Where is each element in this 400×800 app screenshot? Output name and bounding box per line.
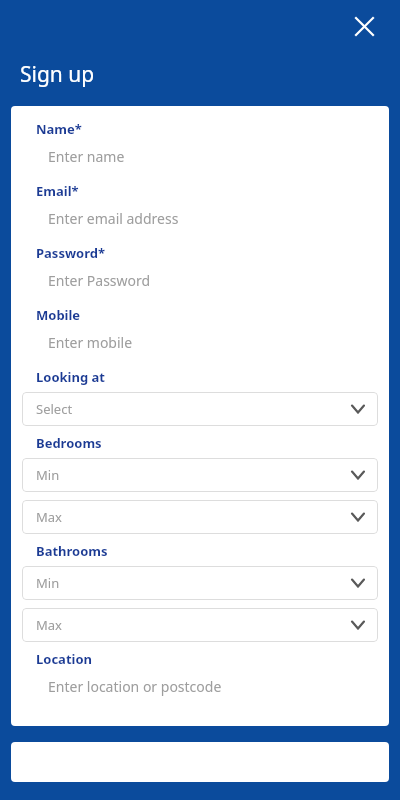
staticText: Mobile — [36, 306, 81, 324]
staticText: Password* — [36, 244, 105, 262]
staticText: Enter Password — [48, 271, 151, 290]
button[interactable]: Enter mobile — [22, 324, 378, 360]
staticText: Max — [36, 616, 348, 634]
button[interactable]: Enter location or postcode — [22, 668, 378, 704]
staticText: Bedrooms — [36, 434, 102, 452]
button[interactable]: Select — [22, 392, 378, 426]
staticText: Min — [36, 466, 348, 484]
button[interactable]: Min — [22, 458, 378, 492]
staticText: Max — [36, 508, 348, 526]
staticText: Enter email address — [48, 209, 179, 228]
staticText: Min — [36, 574, 348, 592]
button[interactable]: Max — [22, 500, 378, 534]
button[interactable]: Min — [22, 566, 378, 600]
button[interactable]: Close — [350, 12, 378, 40]
staticText: Select — [36, 400, 348, 418]
staticText: Name* — [36, 120, 82, 138]
staticText: Enter location or postcode — [48, 677, 222, 696]
button[interactable]: Enter Password — [22, 262, 378, 298]
staticText: Location — [36, 650, 92, 668]
staticText: Email* — [36, 182, 79, 200]
button[interactable]: Max — [22, 608, 378, 642]
staticText: Enter name — [48, 147, 125, 166]
staticText: Bathrooms — [36, 542, 108, 560]
staticText: Looking at — [36, 368, 105, 386]
button[interactable]: Enter name — [22, 138, 378, 174]
staticText: Enter mobile — [48, 333, 133, 352]
staticText: Sign up — [20, 60, 95, 89]
button[interactable]: Enter email address — [22, 200, 378, 236]
